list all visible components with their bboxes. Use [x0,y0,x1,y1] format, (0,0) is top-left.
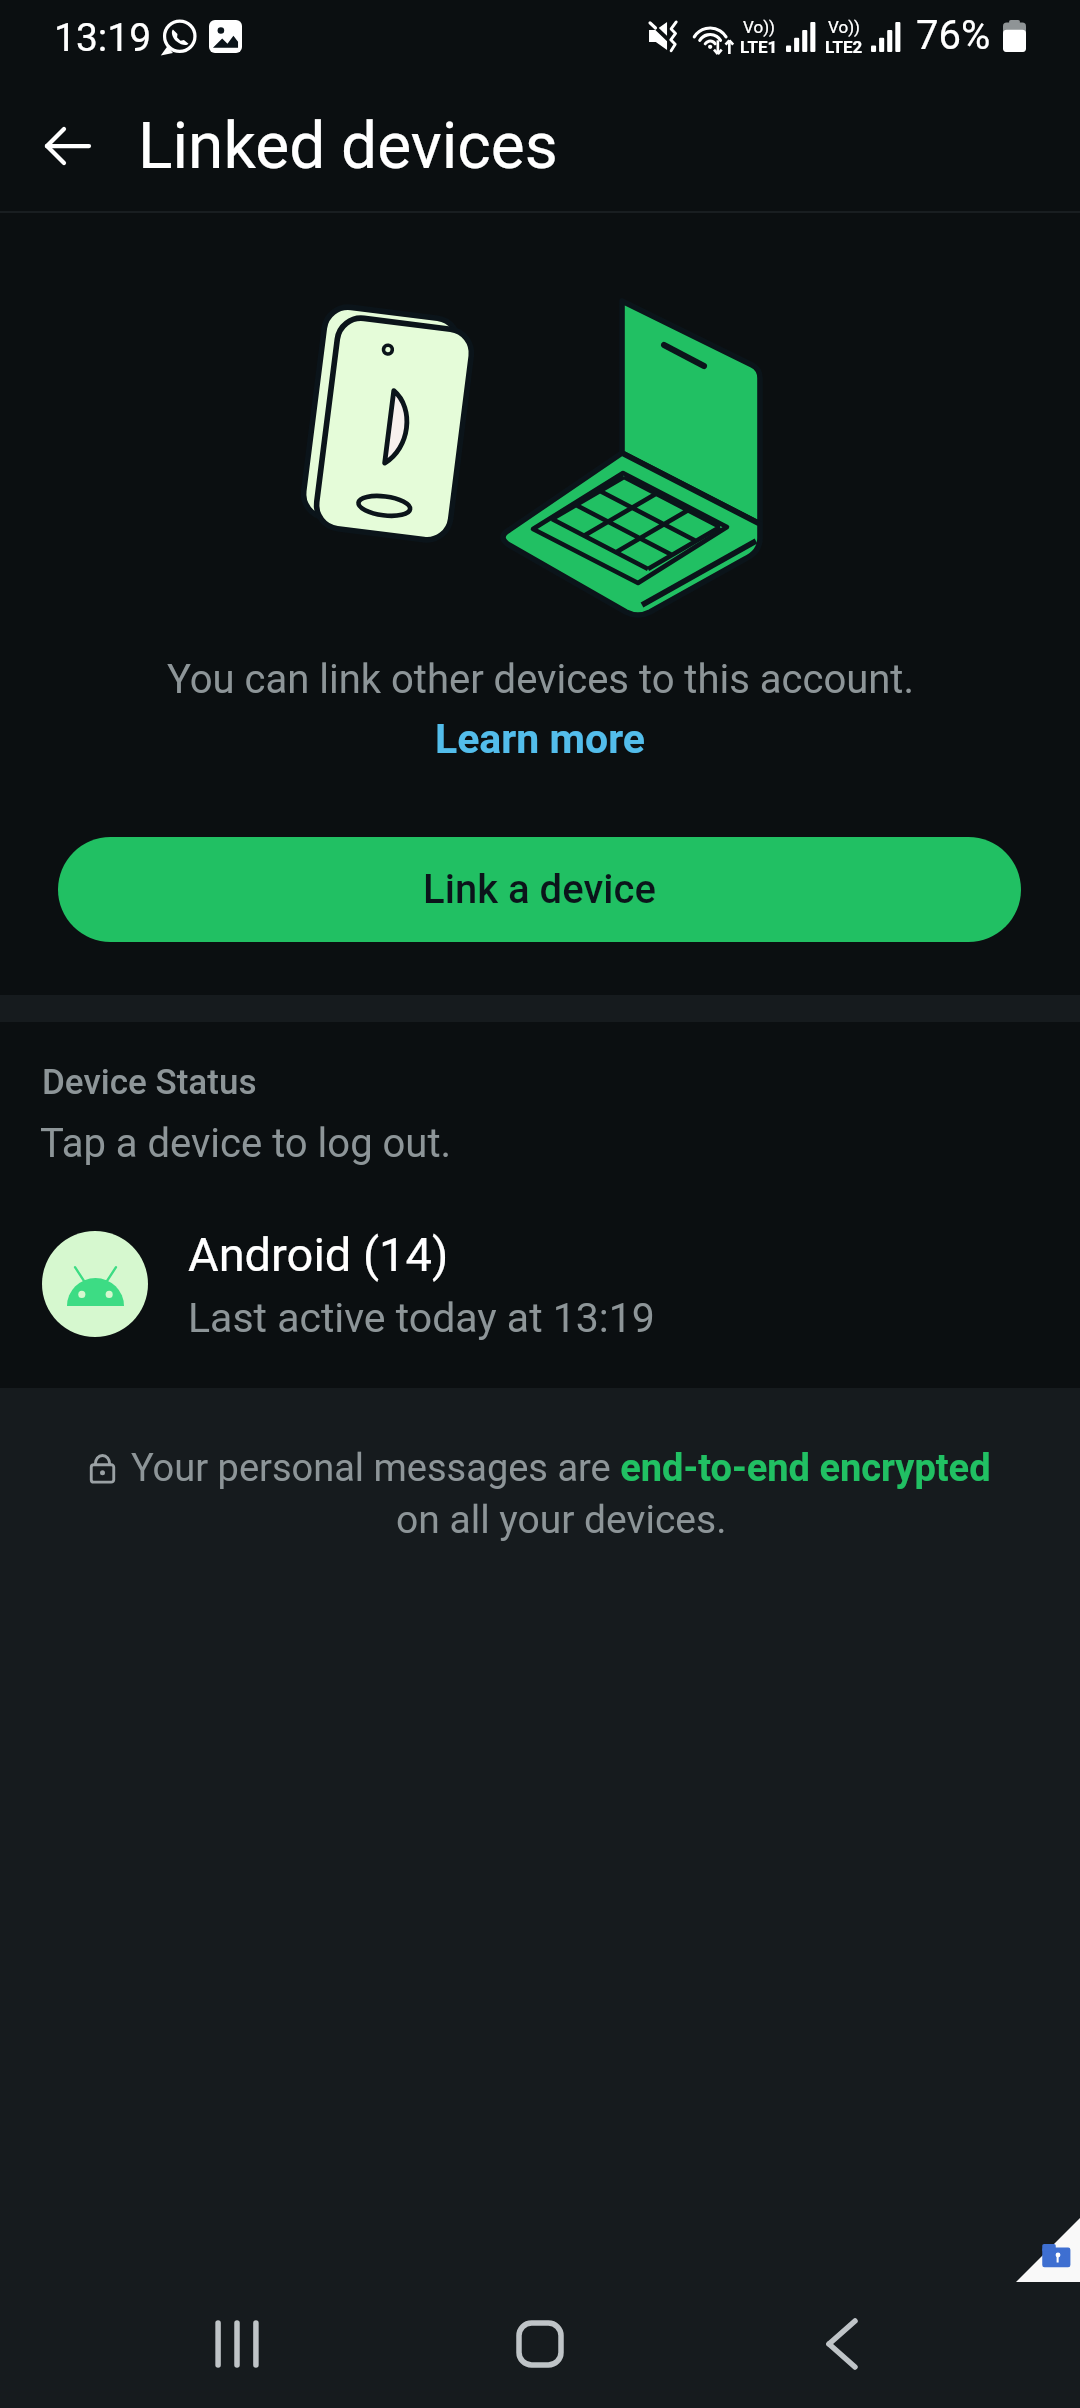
button[interactable]: Back [22,100,114,192]
staticText: Android (14) [188,1227,449,1282]
staticText: Vo)) [828,17,860,37]
staticText: Vo)) [743,17,775,37]
staticText: Device Status [42,1062,257,1103]
button[interactable]: Android (14) [0,1208,1080,1360]
staticText: 13:19 [54,15,152,61]
staticText: 76% [916,12,991,59]
staticText: Your personal messages are end-to-end en… [131,1446,991,1491]
staticText: Link a device [423,866,656,913]
staticText: Linked devices [138,109,558,184]
button[interactable]: Back [782,2284,902,2404]
button[interactable]: Home [480,2284,600,2404]
button[interactable]: Recent apps [177,2284,297,2404]
staticText: on all your devices. [396,1497,727,1543]
button[interactable]: Link a device [58,837,1021,942]
button[interactable]: Learn more [435,715,645,763]
staticText: Learn more [435,715,645,763]
staticText: LTE2 [825,37,863,57]
staticText: Last active today at 13:19 [188,1294,655,1342]
staticText: You can link other devices to this accou… [167,656,914,703]
staticText: Tap a device to log out. [40,1120,452,1167]
staticText: LTE1 [740,37,778,57]
